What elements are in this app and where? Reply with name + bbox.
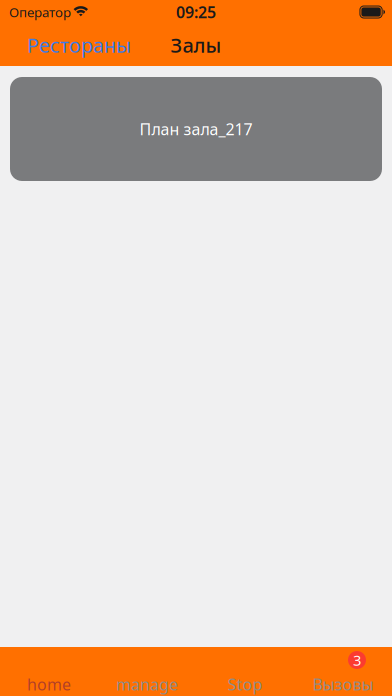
button[interactable]: Stop [196, 647, 294, 696]
staticText: Залы [170, 32, 221, 58]
staticText: Рестораны [27, 32, 131, 58]
staticText: План зала_217 [139, 118, 252, 140]
staticText: Оператор [9, 3, 71, 21]
staticText: home [27, 674, 71, 695]
staticText: 09:25 [176, 1, 216, 23]
staticText: manage [116, 674, 178, 695]
staticText: Stop [227, 674, 262, 695]
button[interactable]: Вызовы [294, 647, 392, 696]
button[interactable]: manage [98, 647, 196, 696]
button[interactable]: План зала_217 [10, 77, 382, 181]
button[interactable]: Рестораны [0, 25, 141, 65]
button[interactable]: home [0, 647, 98, 696]
staticText: Вызовы [312, 674, 373, 695]
staticText: 3 [353, 650, 361, 670]
